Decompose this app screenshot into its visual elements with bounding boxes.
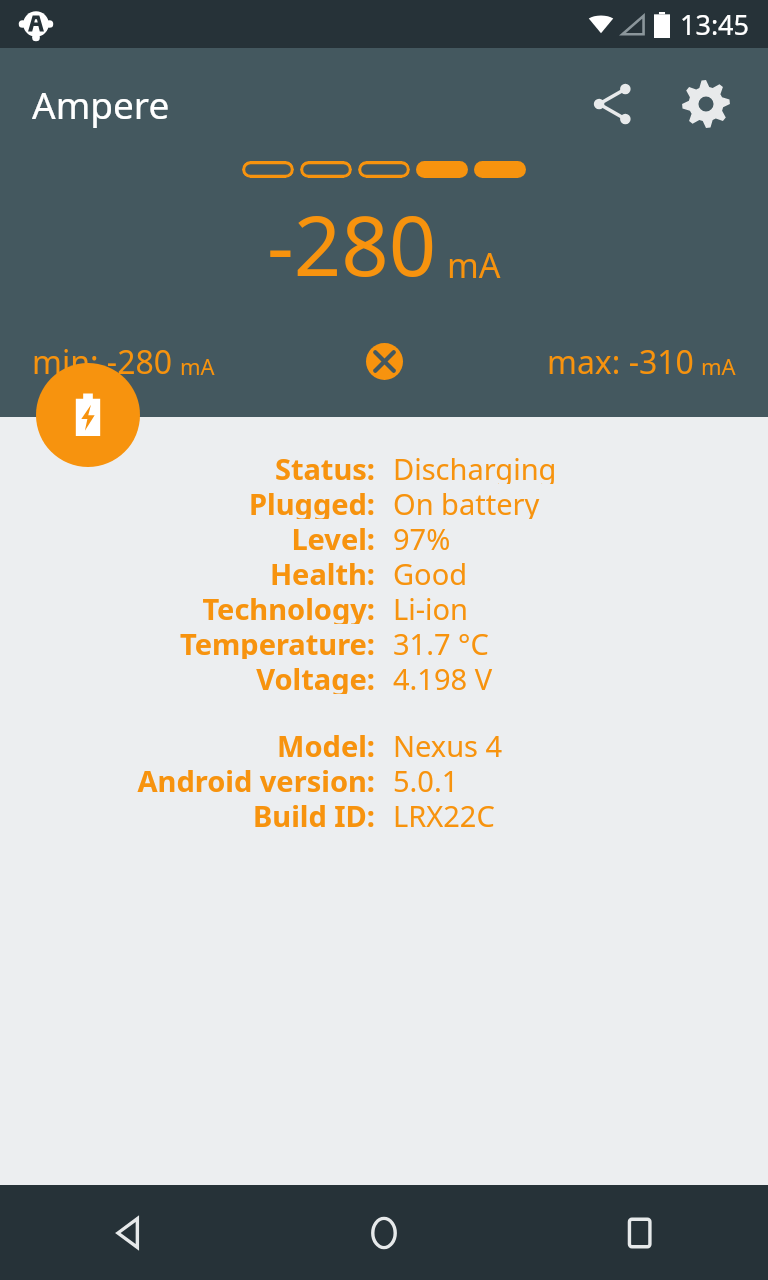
button[interactable]: Back [0, 1185, 256, 1280]
staticText: On battery [393, 484, 540, 519]
staticText: Plugged: [0, 484, 375, 519]
staticText: max: -310 [547, 340, 694, 384]
button[interactable]: Home [256, 1185, 512, 1280]
staticText: Build ID: [0, 796, 375, 831]
staticText: Technology: [0, 589, 375, 624]
staticText: mA [180, 351, 215, 381]
staticText: Voltage: [0, 659, 375, 694]
staticText: -280 [267, 187, 437, 300]
staticText: Model: [0, 726, 375, 761]
staticText: 4.198 V [393, 659, 493, 694]
staticText: Health: [0, 554, 375, 589]
staticText: Good [393, 554, 468, 589]
staticText: Discharging [393, 449, 557, 484]
staticText: 31.7 °C [393, 624, 489, 659]
staticText: Ampere [32, 79, 170, 129]
staticText: Level: [0, 519, 375, 554]
staticText: min: -280 [32, 340, 173, 384]
staticText: Status: [0, 449, 375, 484]
staticText: mA [447, 242, 501, 288]
staticText: Nexus 4 [393, 726, 503, 761]
button[interactable]: Battery measurement [36, 363, 140, 467]
staticText: mA [701, 351, 736, 381]
staticText: Li-ion [393, 589, 468, 624]
button[interactable]: Settings [676, 74, 736, 134]
staticText: 5.0.1 [393, 761, 459, 796]
staticText: Android version: [0, 761, 375, 796]
staticText: Temperature: [0, 624, 375, 659]
staticText: 97% [393, 519, 451, 554]
button[interactable]: Share [582, 74, 642, 134]
button[interactable]: Reset min and max [364, 341, 404, 381]
staticText: 13:45 [680, 6, 750, 43]
button[interactable]: Recent apps [512, 1185, 768, 1280]
staticText: LRX22C [393, 796, 495, 831]
